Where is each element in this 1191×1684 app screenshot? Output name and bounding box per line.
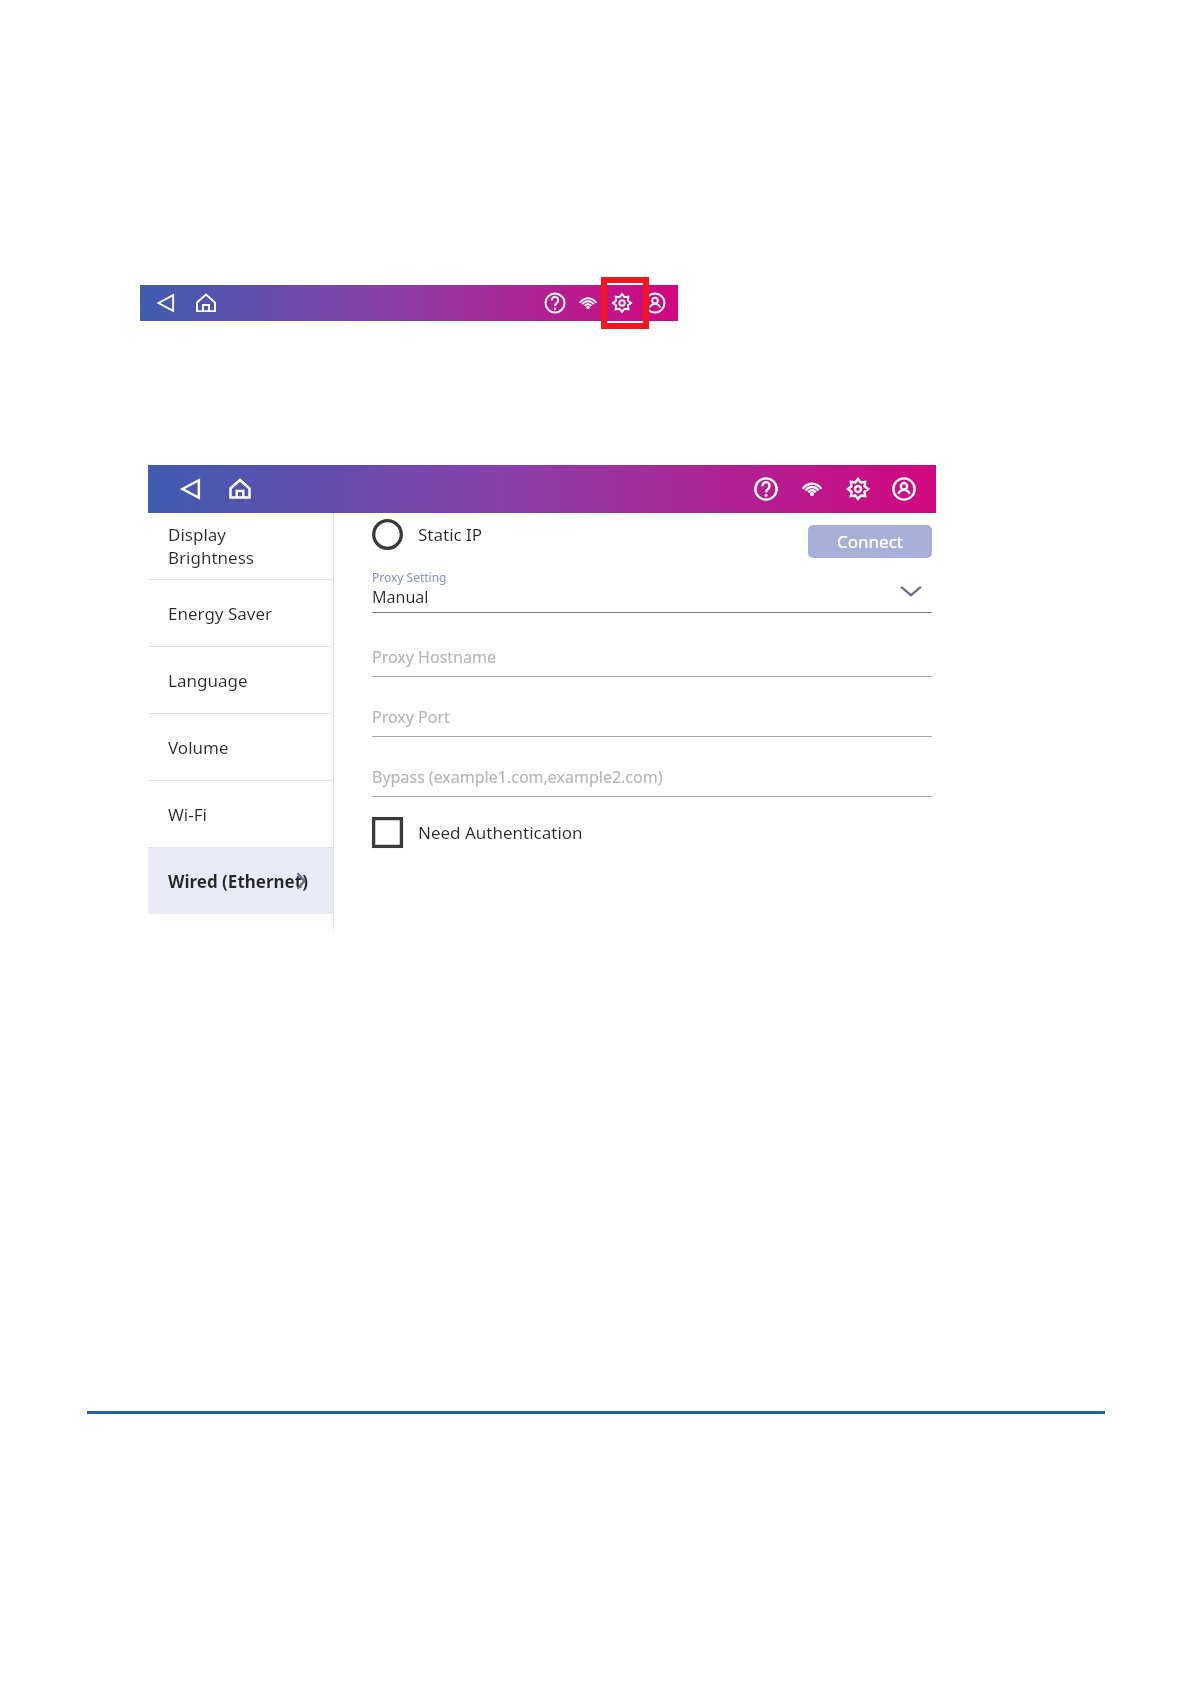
other: Settings highlight [604, 280, 646, 326]
staticText: Language [168, 669, 248, 692]
button[interactable]: Help [744, 467, 788, 511]
button[interactable]: Static IP [372, 519, 483, 550]
button[interactable]: Energy Saver [148, 580, 333, 646]
button[interactable]: Proxy Setting [372, 569, 932, 613]
staticText: Display Brightness [168, 523, 313, 569]
staticText: Wi-Fi [168, 803, 207, 826]
button[interactable]: Proxy Port [372, 706, 932, 737]
button[interactable]: Connect [808, 525, 932, 558]
staticText: Wired (Ethernet) [168, 870, 308, 893]
staticText: Proxy Hostname [372, 646, 496, 668]
button[interactable]: Display Brightness [148, 513, 333, 579]
staticText: Connect [837, 530, 903, 553]
button[interactable]: Home [218, 467, 262, 511]
button[interactable]: Bypass (example1.com,example2.com) [372, 766, 932, 797]
button[interactable]: Back [170, 467, 214, 511]
button[interactable]: Wired (Ethernet) [148, 848, 333, 914]
staticText: Need Authentication [418, 821, 583, 844]
button[interactable]: Wi-Fi [790, 467, 834, 511]
staticText: Proxy Setting [372, 569, 447, 585]
staticText: Static IP [418, 523, 483, 546]
staticText: Manual [372, 586, 429, 608]
button[interactable]: Wi-Fi [148, 781, 333, 847]
staticText: Proxy Port [372, 706, 450, 728]
button[interactable]: Account [882, 467, 926, 511]
staticText: Bypass (example1.com,example2.com) [372, 766, 663, 788]
staticText: Volume [168, 736, 229, 759]
button[interactable]: Language [148, 647, 333, 713]
button[interactable]: Proxy Hostname [372, 646, 932, 677]
button[interactable]: Volume [148, 714, 333, 780]
button[interactable]: Settings [836, 467, 880, 511]
staticText: Energy Saver [168, 602, 273, 625]
button[interactable]: Need Authentication [372, 817, 583, 848]
